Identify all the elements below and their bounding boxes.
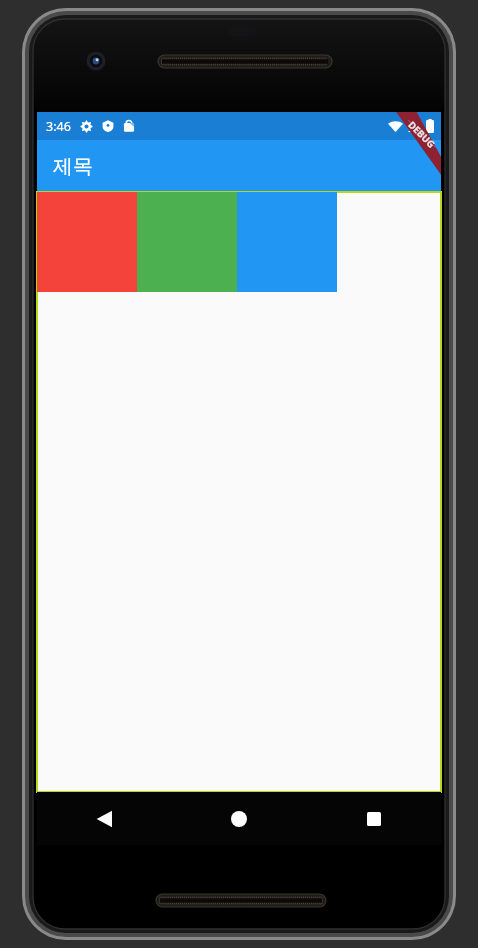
button[interactable]: Back bbox=[37, 792, 171, 845]
button[interactable]: Home bbox=[171, 792, 306, 845]
button[interactable]: Recent apps bbox=[306, 792, 441, 845]
staticText: 3:46 bbox=[46, 118, 71, 135]
staticText: DEBUG bbox=[405, 118, 438, 151]
staticText: 제목 bbox=[53, 154, 93, 179]
